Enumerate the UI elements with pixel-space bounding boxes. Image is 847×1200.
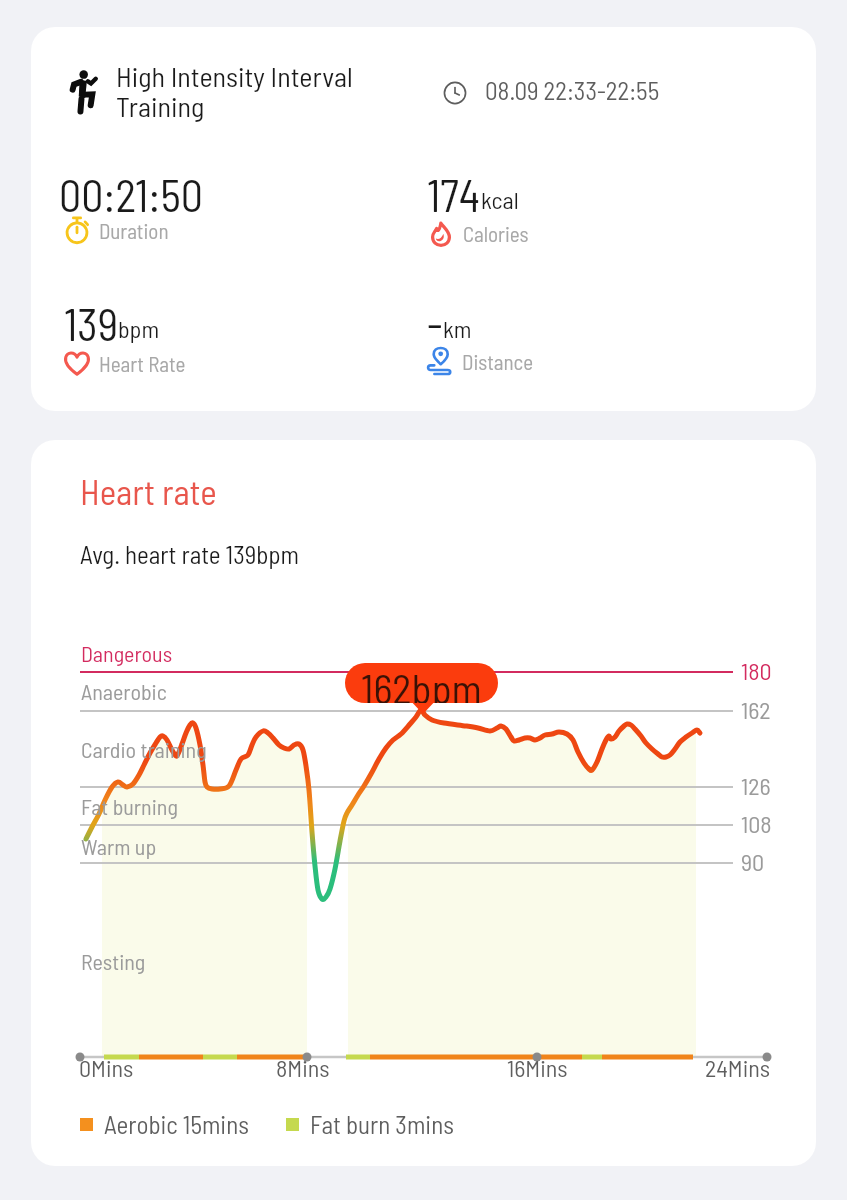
staticText: bpm (118, 314, 160, 343)
staticText: Duration (99, 218, 169, 243)
staticText: High Intensity Interval Training (116, 59, 353, 123)
staticText: kcal (481, 185, 519, 214)
staticText: Calories (463, 221, 529, 246)
staticText: Anaerobic (81, 678, 167, 704)
staticText: Resting (81, 948, 146, 974)
other: Heart Rate (63, 349, 91, 377)
staticText: 24Mins (705, 1053, 771, 1082)
other: Running workout (66, 65, 100, 117)
staticText: 162 (741, 695, 771, 724)
staticText: Warm up (81, 833, 157, 859)
staticText: 08.09 22:33-22:55 (485, 75, 660, 105)
button[interactable]: 162bpm (345, 663, 498, 703)
staticText: Heart rate (80, 470, 217, 512)
button[interactable]: Aerobic 15mins (80, 1109, 454, 1139)
staticText: Aerobic 15mins (104, 1109, 249, 1139)
staticText: Distance (462, 349, 534, 374)
staticText: 139 (64, 297, 118, 350)
staticText: 90 (741, 847, 765, 876)
staticText: Dangerous (81, 640, 173, 666)
staticText: 162bpm (361, 663, 482, 703)
staticText: 8Mins (276, 1053, 330, 1082)
button[interactable]: Heart rate (31, 440, 816, 1166)
staticText: Heart Rate (99, 351, 186, 376)
staticText: 180 (741, 656, 772, 685)
staticText: Fat burn 3mins (310, 1109, 454, 1139)
other: Calories (427, 219, 455, 247)
staticText: 174 (427, 168, 481, 221)
staticText: km (443, 314, 472, 343)
staticText: 00:21:50 (59, 168, 203, 221)
staticText: 126 (741, 771, 771, 800)
staticText: Avg. heart rate 139bpm (80, 539, 300, 569)
staticText: 108 (741, 809, 772, 838)
other: Duration (63, 216, 91, 244)
staticText: Cardio training (81, 736, 207, 762)
staticText: 16Mins (507, 1053, 568, 1082)
staticText: 0Mins (79, 1053, 134, 1082)
other: Distance (426, 347, 454, 375)
button[interactable]: Running workout (31, 27, 816, 411)
staticText: - (427, 297, 443, 350)
staticText: Fat burning (81, 793, 178, 819)
